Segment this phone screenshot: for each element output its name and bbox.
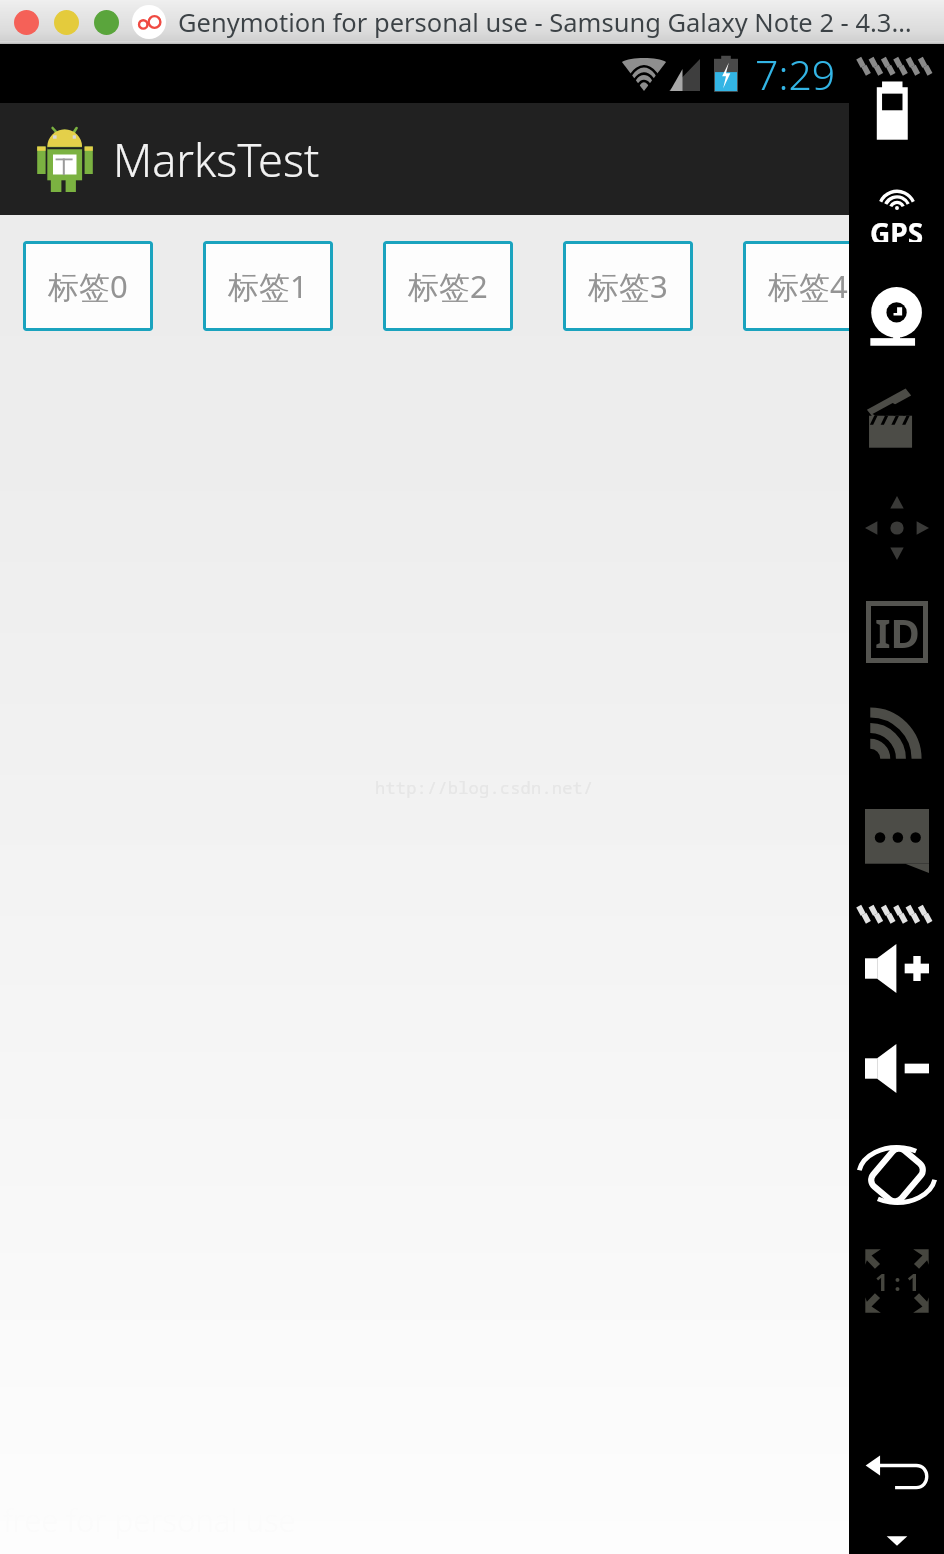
button[interactable]: 标签0 xyxy=(23,241,153,331)
button[interactable]: Network xyxy=(870,705,924,759)
staticText: MarksTest xyxy=(113,129,320,190)
staticText: 标签4 xyxy=(768,265,848,307)
button[interactable]: Back xyxy=(865,1455,929,1490)
button[interactable]: Volume down xyxy=(865,1043,929,1094)
button[interactable]: Volume up xyxy=(865,943,929,994)
staticText: 标签3 xyxy=(588,265,668,307)
button[interactable]: 标签3 xyxy=(563,241,693,331)
staticText: GPS xyxy=(870,214,924,242)
button[interactable]: Close window xyxy=(14,10,39,35)
button[interactable]: Zoom window xyxy=(94,10,119,35)
button[interactable]: Rotate xyxy=(854,1144,940,1206)
button[interactable]: Minimise window xyxy=(54,10,79,35)
staticText: Genymotion for personal use - Samsung Ga… xyxy=(178,5,912,40)
button[interactable]: Record video xyxy=(854,385,940,449)
button[interactable]: 标签2 xyxy=(383,241,513,331)
staticText: 标签1 xyxy=(228,265,308,307)
staticText: 标签2 xyxy=(408,265,488,307)
button[interactable]: 标签4 xyxy=(743,241,873,331)
button[interactable]: Identifiers xyxy=(866,601,928,663)
button[interactable]: 标签1 xyxy=(203,241,333,331)
button[interactable]: Camera xyxy=(854,286,940,352)
button[interactable]: Scale 1:1 xyxy=(864,1248,930,1314)
staticText: 1 : 1 xyxy=(875,1266,920,1297)
button[interactable]: Accelerometer xyxy=(854,494,940,562)
button[interactable]: GPS xyxy=(854,186,940,242)
button[interactable]: Genymotion logo xyxy=(132,5,166,39)
button[interactable]: More xyxy=(854,1529,940,1553)
staticText: http://blog.csdn.net/ xyxy=(375,776,594,799)
button[interactable]: SMS xyxy=(865,809,929,873)
staticText: 7:29 xyxy=(755,46,836,102)
button[interactable]: Battery xyxy=(854,77,940,141)
staticText: ID xyxy=(875,605,920,659)
staticText: 标签0 xyxy=(48,265,128,307)
